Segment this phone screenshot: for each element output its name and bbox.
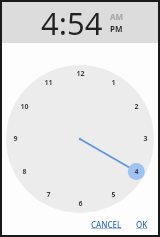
staticText: 7 <box>46 190 51 200</box>
button[interactable]: CANCEL <box>87 217 126 232</box>
button[interactable]: AM <box>110 11 124 22</box>
staticText: 4 <box>134 167 139 177</box>
staticText: 10 <box>20 102 29 112</box>
staticText: 12 <box>76 69 85 79</box>
button[interactable]: 1 <box>2 43 158 213</box>
staticText: 5 <box>111 190 116 200</box>
staticText: 11 <box>44 78 53 88</box>
button[interactable]: PM <box>110 23 123 34</box>
staticText: OK <box>136 219 148 230</box>
staticText: 2 <box>134 102 139 112</box>
staticText: 3 <box>143 134 148 144</box>
staticText: 6 <box>78 199 83 209</box>
button[interactable]: 4:54 <box>41 2 103 43</box>
staticText: 1 <box>111 78 116 88</box>
button[interactable]: OK <box>132 217 152 232</box>
staticText: 8 <box>22 167 27 177</box>
staticText: 9 <box>13 134 18 144</box>
staticText: CANCEL <box>91 219 122 230</box>
